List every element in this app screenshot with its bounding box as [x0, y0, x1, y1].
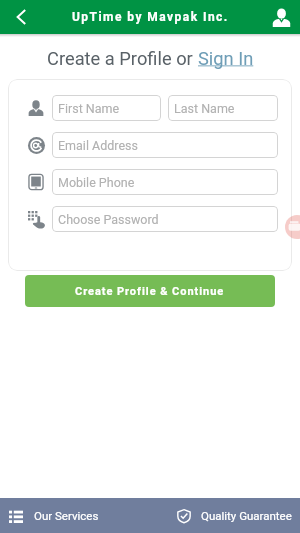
- button[interactable]: Quality Guarantee: [150, 498, 300, 533]
- button[interactable]: Our Services: [0, 498, 150, 533]
- button[interactable]: First Name: [52, 95, 161, 121]
- staticText: Choose Password: [58, 212, 159, 227]
- button[interactable]: Mobile Phone: [52, 169, 278, 195]
- staticText: Mobile Phone: [58, 175, 135, 190]
- staticText: Quality Guarantee: [201, 509, 292, 522]
- staticText: Last Name: [174, 101, 235, 116]
- button[interactable]: Sign In: [198, 48, 254, 69]
- staticText: Create a Profile or: [47, 48, 198, 69]
- staticText: UpTime by Mavpak Inc.: [72, 10, 229, 24]
- button[interactable]: Account: [269, 5, 293, 29]
- button[interactable]: Email Address: [52, 132, 278, 158]
- button[interactable]: Create Profile & Continue: [25, 275, 275, 307]
- staticText: Create Profile & Continue: [75, 285, 225, 298]
- staticText: Email Address: [58, 138, 138, 153]
- staticText: First Name: [58, 101, 120, 116]
- button[interactable]: Choose Password: [52, 206, 278, 232]
- button[interactable]: Back: [0, 0, 34, 34]
- staticText: Our Services: [34, 509, 99, 522]
- button[interactable]: Last Name: [168, 95, 278, 121]
